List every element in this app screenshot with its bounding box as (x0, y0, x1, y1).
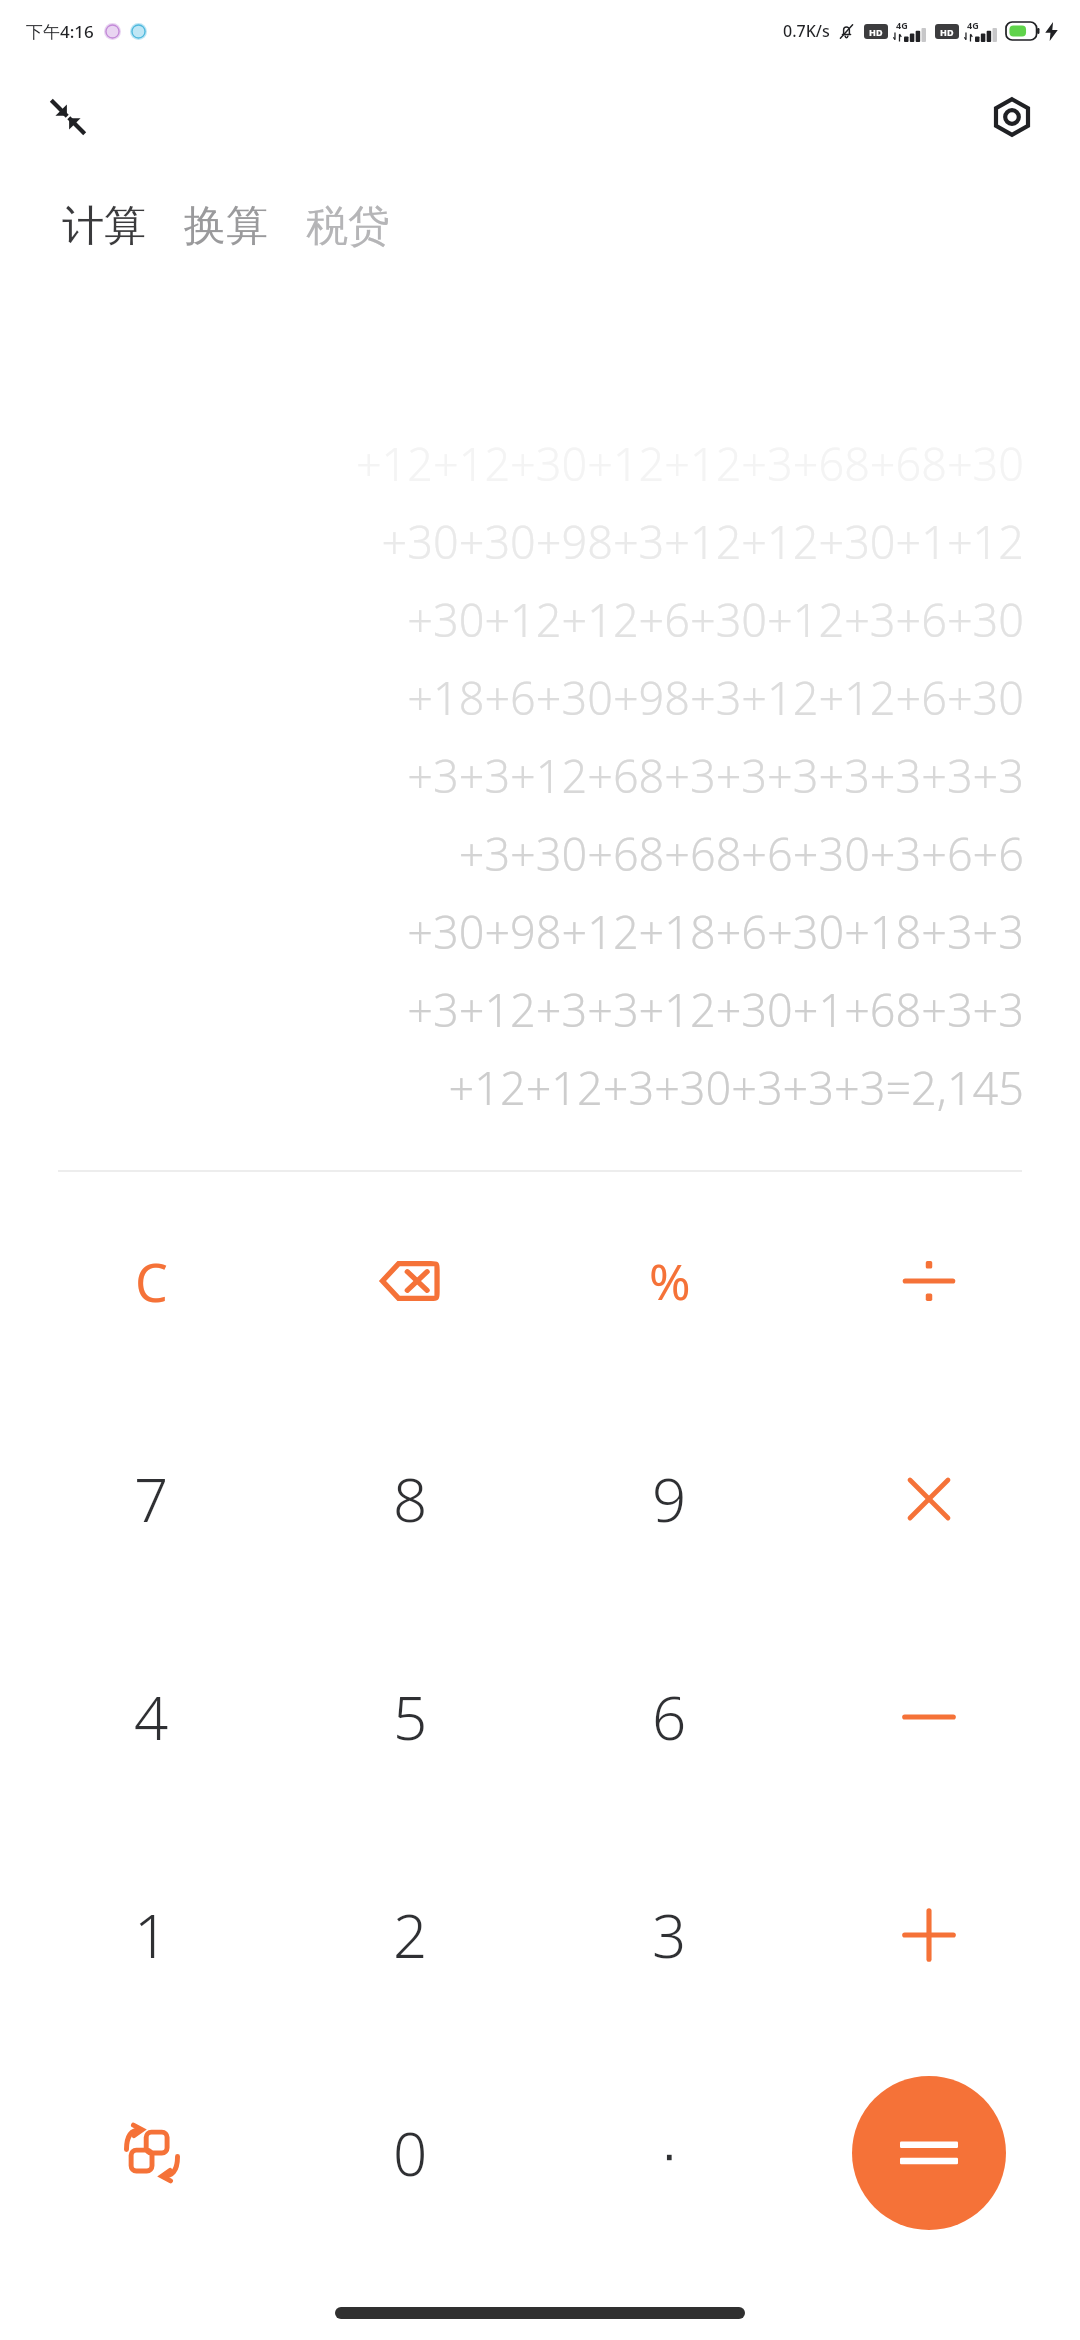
button[interactable]: 2 (281, 1826, 540, 2044)
staticText: +12+12+3+30+3+3+3=2,145 (448, 1057, 1024, 1118)
button[interactable]: 4 (22, 1608, 281, 1826)
button[interactable]: 6 (540, 1608, 799, 1826)
button[interactable]: Plus (799, 1826, 1058, 2044)
button[interactable]: Backspace (281, 1172, 540, 1390)
button[interactable]: 7 (22, 1390, 281, 1608)
staticText: 3 (652, 1894, 687, 1976)
button[interactable]: 8 (281, 1390, 540, 1608)
staticText: 下午4:16 (26, 20, 94, 43)
button[interactable] (540, 2044, 799, 2262)
button[interactable]: Collapse (36, 85, 100, 149)
button[interactable]: Divide (799, 1172, 1058, 1390)
button[interactable]: 1 (22, 1826, 281, 2044)
staticText: 6 (652, 1676, 687, 1758)
staticText: HD (940, 26, 954, 38)
button[interactable]: Convert (22, 2044, 281, 2262)
button[interactable]: 5 (281, 1608, 540, 1826)
staticText: 2 (393, 1894, 428, 1976)
staticText: C (135, 1246, 168, 1317)
staticText: 0 (393, 2112, 428, 2194)
staticText: 税贷 (306, 200, 390, 253)
button[interactable]: Multiply (799, 1390, 1058, 1608)
button[interactable]: 9 (540, 1390, 799, 1608)
button[interactable]: % (540, 1172, 799, 1390)
staticText: 5 (393, 1676, 428, 1758)
staticText: 计算 (62, 200, 146, 253)
staticText: +30+12+12+6+30+12+3+6+30 (407, 589, 1024, 650)
staticText: +12+12+30+12+12+3+68+68+30 (355, 433, 1024, 494)
button[interactable]: 计算 (58, 192, 150, 261)
staticText: 1 (134, 1894, 169, 1976)
staticText: +3+3+12+68+3+3+3+3+3+3+3 (407, 745, 1024, 806)
button[interactable]: Settings (980, 85, 1044, 149)
staticText: 4G (967, 19, 979, 31)
staticText: +3+30+68+68+6+30+3+6+6 (458, 823, 1024, 884)
button[interactable]: Equals (799, 2044, 1058, 2262)
button[interactable]: C (22, 1172, 281, 1390)
staticText: +3+12+3+3+12+30+1+68+3+3 (407, 979, 1024, 1040)
staticText: % (649, 1247, 691, 1315)
button[interactable]: 税贷 (302, 192, 394, 261)
button[interactable]: 0 (281, 2044, 540, 2262)
staticText: +18+6+30+98+3+12+12+6+30 (407, 667, 1024, 728)
staticText: 4 (134, 1676, 169, 1758)
staticText: 换算 (184, 200, 268, 253)
staticText: 7 (134, 1458, 169, 1540)
staticText: +30+98+12+18+6+30+18+3+3 (407, 901, 1024, 962)
staticText: 4G (896, 19, 908, 31)
staticText: HD (869, 26, 883, 38)
staticText: 9 (652, 1458, 687, 1540)
staticText: 0.7K/s (783, 20, 830, 42)
staticText: 8 (393, 1458, 428, 1540)
button[interactable]: Minus (799, 1608, 1058, 1826)
staticText: +30+30+98+3+12+12+30+1+12 (381, 511, 1024, 572)
button[interactable]: 3 (540, 1826, 799, 2044)
button[interactable]: 换算 (180, 192, 272, 261)
